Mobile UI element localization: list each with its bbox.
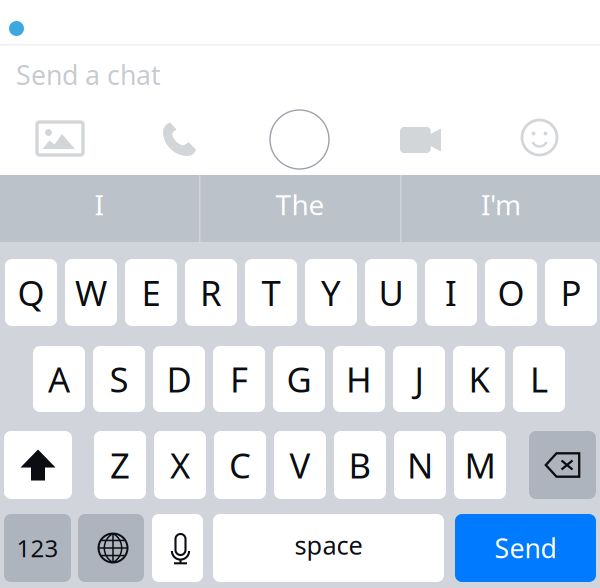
staticText: W — [75, 269, 107, 315]
button[interactable]: Send — [455, 514, 596, 582]
staticText: B — [348, 442, 371, 488]
button[interactable]: Photos — [37, 122, 83, 155]
staticText: J — [414, 356, 423, 402]
button[interactable]: Next keyboard — [78, 514, 144, 582]
button[interactable]: Shift — [4, 431, 72, 499]
button[interactable]: Camera — [270, 110, 329, 169]
staticText: I — [94, 186, 103, 223]
staticText: D — [166, 356, 191, 402]
staticText: I — [445, 269, 457, 315]
staticText: R — [200, 269, 222, 315]
staticText: Send — [494, 530, 556, 566]
button[interactable]: I'm — [402, 175, 600, 242]
staticText: G — [286, 356, 311, 402]
button[interactable]: U — [365, 259, 417, 326]
button[interactable]: M — [454, 431, 506, 499]
button[interactable]: I — [0, 175, 198, 242]
staticText: U — [378, 269, 403, 315]
staticText: space — [294, 528, 362, 562]
staticText: X — [170, 442, 190, 488]
staticText: 123 — [16, 532, 58, 564]
button[interactable]: R — [185, 259, 237, 326]
button[interactable]: Q — [5, 259, 57, 326]
button[interactable]: A — [33, 346, 85, 412]
staticText: Y — [321, 269, 341, 315]
staticText: F — [230, 356, 248, 402]
button[interactable]: G — [273, 346, 325, 412]
button[interactable]: Delete — [529, 431, 596, 499]
button[interactable]: O — [485, 259, 537, 326]
staticText: N — [407, 442, 433, 488]
button[interactable]: K — [453, 346, 505, 412]
button[interactable]: L — [513, 346, 565, 412]
staticText: P — [560, 269, 581, 315]
button[interactable]: F — [213, 346, 265, 412]
button[interactable]: Video call — [400, 127, 441, 153]
staticText: Send a chat — [16, 57, 161, 92]
button[interactable]: Dictate — [152, 514, 203, 582]
button[interactable]: Call — [161, 121, 198, 158]
button[interactable]: T — [245, 259, 297, 326]
button[interactable]: V — [274, 431, 326, 499]
staticText: M — [464, 442, 495, 488]
button[interactable]: P — [545, 259, 597, 326]
staticText: S — [109, 356, 128, 402]
button[interactable]: B — [334, 431, 386, 499]
button[interactable]: J — [393, 346, 445, 412]
staticText: L — [530, 356, 548, 402]
staticText: H — [346, 356, 372, 402]
button[interactable]: 123 — [4, 514, 71, 582]
staticText: C — [229, 442, 251, 488]
staticText: The — [275, 186, 324, 223]
staticText: E — [141, 269, 160, 315]
button[interactable]: Stickers — [522, 120, 557, 155]
staticText: Z — [110, 442, 130, 488]
staticText: V — [289, 442, 310, 488]
button[interactable]: S — [93, 346, 145, 412]
button[interactable]: I — [425, 259, 477, 326]
button[interactable]: D — [153, 346, 205, 412]
button[interactable]: Y — [305, 259, 357, 326]
staticText: O — [497, 269, 524, 315]
button[interactable]: H — [333, 346, 385, 412]
staticText: Q — [17, 269, 44, 315]
button[interactable]: space — [213, 514, 444, 582]
button[interactable]: W — [65, 259, 117, 326]
staticText: K — [468, 356, 489, 402]
button[interactable]: E — [125, 259, 177, 326]
button[interactable]: Z — [94, 431, 146, 499]
staticText: A — [48, 356, 70, 402]
button[interactable]: The — [201, 175, 399, 242]
staticText: I'm — [481, 186, 521, 223]
staticText: T — [261, 269, 280, 315]
button[interactable]: C — [214, 431, 266, 499]
button[interactable]: N — [394, 431, 446, 499]
button[interactable]: X — [154, 431, 206, 499]
